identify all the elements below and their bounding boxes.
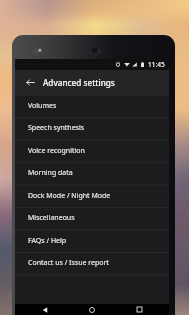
- staticText: Miscellaneous: [28, 213, 75, 223]
- button[interactable]: Back: [17, 70, 43, 95]
- staticText: Volumes: [28, 101, 57, 111]
- button[interactable]: Voice recognition: [15, 140, 169, 162]
- button[interactable]: Speech synthesis: [15, 117, 169, 139]
- staticText: Speech synthesis: [28, 123, 85, 133]
- button[interactable]: Morning data: [15, 162, 169, 184]
- staticText: Morning data: [28, 168, 73, 178]
- staticText: FAQs / Help: [28, 236, 67, 246]
- staticText: Voice recognition: [28, 146, 85, 156]
- button[interactable]: FAQs / Help: [15, 230, 169, 252]
- button[interactable]: Volumes: [15, 95, 169, 117]
- staticText: 11:45: [148, 60, 165, 69]
- button[interactable]: Back: [28, 304, 62, 315]
- button[interactable]: Contact us / Issue report: [15, 252, 169, 274]
- button[interactable]: Home: [75, 304, 109, 315]
- staticText: Advanced settings: [43, 77, 115, 88]
- button[interactable]: Miscellaneous: [15, 207, 169, 229]
- button[interactable]: Dock Mode / Night Mode: [15, 185, 169, 207]
- staticText: Dock Mode / Night Mode: [28, 191, 111, 201]
- button[interactable]: Recent apps: [122, 304, 156, 315]
- staticText: Contact us / Issue report: [28, 258, 109, 268]
